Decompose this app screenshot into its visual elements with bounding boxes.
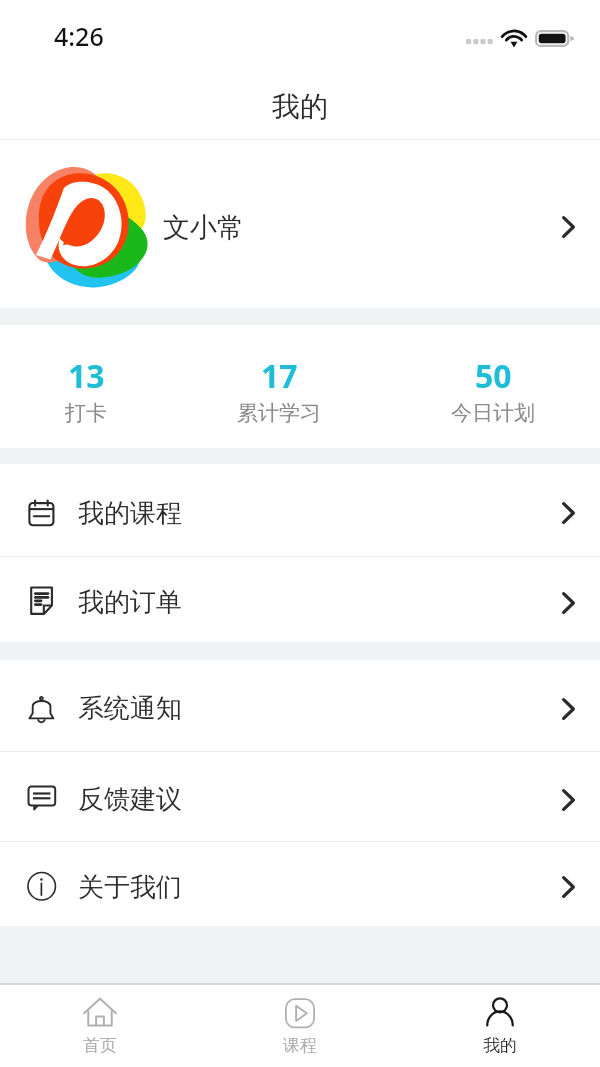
staticText: 关于我们 [78,871,182,904]
button[interactable]: 文小常 [0,140,600,308]
button[interactable]: Profile [400,985,600,1067]
button[interactable]: 17 [237,348,321,426]
button[interactable]: Home [0,985,200,1067]
staticText: 50 [475,354,512,398]
staticText: 课程 [283,1035,317,1056]
staticText: 累计学习 [237,400,321,426]
button[interactable]: 我的课程 [0,464,600,556]
button[interactable]: 系统通知 [0,660,600,751]
staticText: 文小常 [163,211,244,245]
staticText: 系统通知 [78,692,182,725]
staticText: 反馈建议 [78,783,182,816]
staticText: 我的 [483,1035,517,1056]
button[interactable]: 关于我们 [0,842,600,926]
staticText: 今日计划 [451,400,535,426]
staticText: 我的订单 [78,586,182,619]
staticText: 打卡 [65,400,107,426]
staticText: 首页 [83,1035,117,1056]
button[interactable]: Courses [200,985,400,1067]
button[interactable]: 反馈建议 [0,752,600,841]
button[interactable]: 我的订单 [0,557,600,642]
staticText: 13 [68,354,105,398]
staticText: 17 [261,354,298,398]
button[interactable]: 13 [65,348,107,426]
staticText: 我的 [272,89,328,124]
staticText: 4:26 [54,19,104,53]
button[interactable]: 50 [451,348,535,426]
staticText: 我的课程 [78,497,182,530]
